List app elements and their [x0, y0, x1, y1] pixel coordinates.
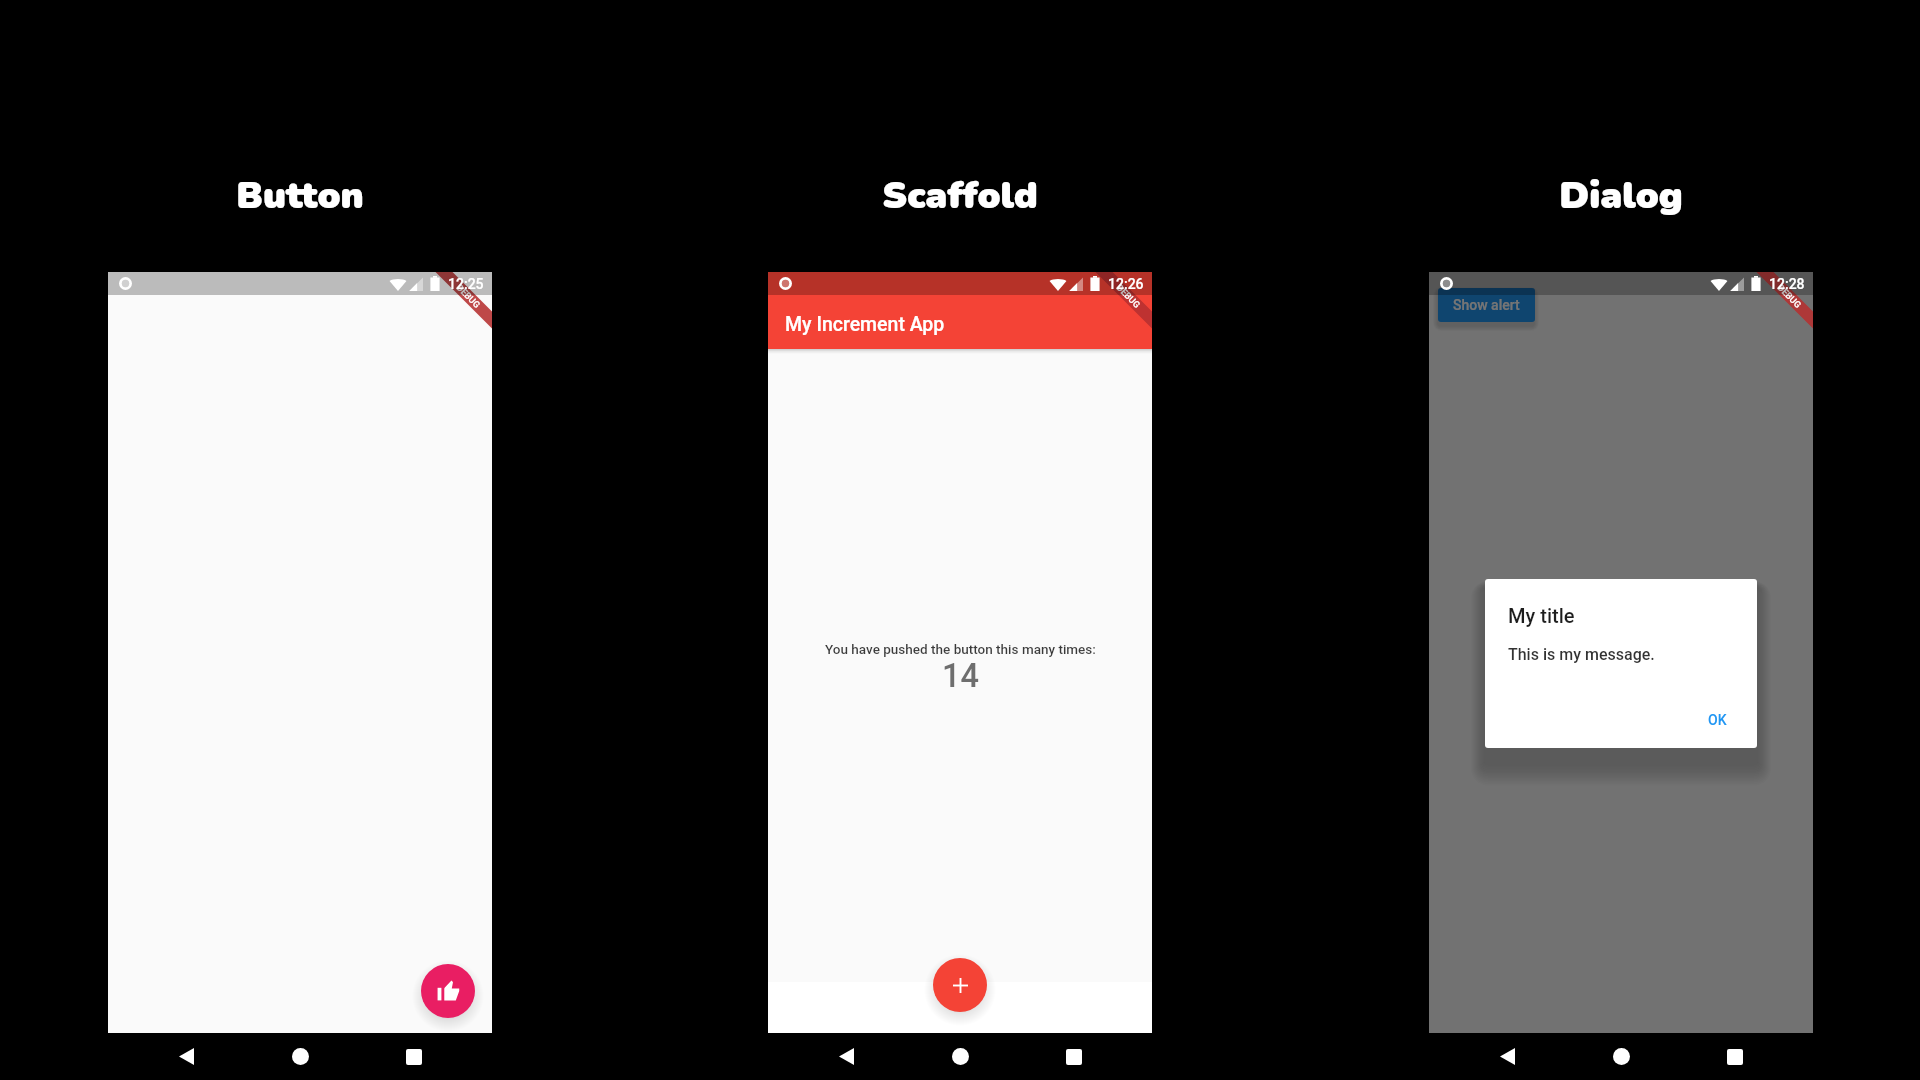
staticText: Dialog [1559, 170, 1683, 221]
staticText: DEBUG [454, 283, 482, 311]
button[interactable]: Back [810, 1033, 882, 1080]
staticText: DEBUG [1775, 283, 1803, 311]
staticText: 14 [942, 657, 979, 695]
staticText: 12:25 [448, 276, 484, 292]
staticText: You have pushed the button this many tim… [825, 641, 1096, 657]
staticText: Show alert [1453, 297, 1520, 313]
button[interactable]: Recent apps [1038, 1033, 1110, 1080]
staticText: Button [236, 170, 364, 221]
button[interactable]: Back [150, 1033, 222, 1080]
button[interactable]: Home [924, 1033, 996, 1080]
staticText: My Increment App [785, 313, 945, 336]
button[interactable]: Back [1471, 1033, 1543, 1080]
button[interactable]: OK [1696, 704, 1739, 736]
button[interactable]: Increment [933, 958, 987, 1012]
staticText: OK [1708, 712, 1727, 728]
button[interactable]: Home [1585, 1033, 1657, 1080]
button[interactable]: Show alert [1438, 288, 1535, 322]
staticText: 12:28 [1769, 276, 1805, 292]
button[interactable]: Recent apps [378, 1033, 450, 1080]
button[interactable]: Recent apps [1699, 1033, 1771, 1080]
button[interactable]: Dismiss dialog [1429, 272, 1813, 1033]
staticText: DEBUG [1114, 283, 1142, 311]
staticText: Scaffold [882, 170, 1038, 221]
staticText: 12:26 [1108, 276, 1144, 292]
button[interactable]: Home [264, 1033, 336, 1080]
staticText: My title [1508, 604, 1575, 627]
button[interactable]: Like [421, 964, 475, 1018]
staticText: This is my message. [1508, 645, 1655, 664]
